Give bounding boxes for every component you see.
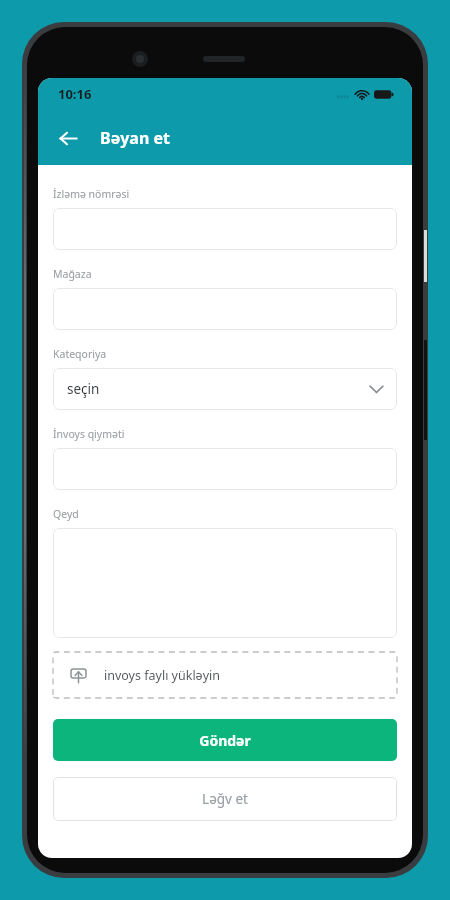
staticText: 10:16 — [58, 85, 92, 103]
staticText: İzləmə nömrəsi — [53, 187, 130, 201]
staticText: İnvoys qiyməti — [53, 427, 125, 441]
button[interactable]: seçin — [53, 368, 397, 410]
staticText: Göndər — [199, 731, 251, 750]
staticText: Qeyd — [53, 507, 79, 521]
staticText: Mağaza — [53, 267, 92, 281]
button[interactable] — [53, 448, 397, 490]
staticText: Bəyan et — [100, 127, 170, 149]
button[interactable] — [53, 288, 397, 330]
button[interactable] — [53, 208, 397, 250]
staticText: seçin — [67, 380, 100, 398]
staticText: Kateqoriya — [53, 347, 107, 361]
staticText: invoys faylı yükləyin — [104, 667, 220, 684]
button[interactable]: Ləğv et — [53, 777, 397, 821]
button[interactable]: Göndər — [53, 719, 397, 761]
button[interactable]: invoys faylı yükləyin — [53, 652, 397, 698]
button[interactable]: Back — [50, 120, 86, 156]
staticText: Ləğv et — [202, 790, 248, 808]
button[interactable] — [53, 528, 397, 638]
